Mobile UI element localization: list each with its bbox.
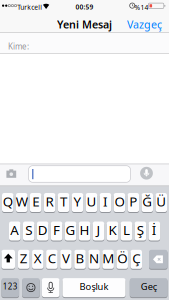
button[interactable]: Geç: [130, 278, 167, 298]
staticText: Kime:: [8, 41, 29, 52]
button[interactable]: S: [23, 221, 34, 241]
button[interactable]: B: [74, 249, 86, 269]
button[interactable]: C: [46, 249, 58, 269]
button[interactable]: Z: [18, 249, 29, 269]
staticText: F: [53, 221, 60, 239]
button[interactable]: Q: [2, 192, 13, 212]
staticText: Q: [3, 192, 13, 210]
staticText: U: [86, 192, 96, 210]
staticText: Ğ: [142, 192, 152, 210]
staticText: I: [103, 192, 108, 210]
staticText: H: [79, 221, 89, 239]
staticText: İ: [152, 221, 157, 239]
button[interactable]: J: [93, 221, 104, 241]
button[interactable]: M: [102, 249, 114, 269]
staticText: G: [66, 221, 76, 239]
staticText: W: [16, 192, 28, 210]
staticText: P: [129, 192, 137, 210]
button[interactable]: F: [51, 221, 62, 241]
button[interactable]: İ: [149, 221, 160, 241]
button[interactable]: Vazgeç: [127, 17, 162, 32]
staticText: Y: [73, 192, 81, 210]
staticText: S: [25, 221, 32, 239]
button[interactable]: L: [121, 221, 132, 241]
staticText: N: [89, 249, 99, 267]
button[interactable]: I: [100, 192, 111, 212]
staticText: Boşluk: [79, 280, 108, 293]
button[interactable]: Sesli mesaj kaydet: [140, 167, 153, 180]
staticText: M: [102, 249, 114, 267]
staticText: O: [114, 192, 124, 210]
button[interactable]: Ş: [135, 221, 146, 241]
button[interactable]: K: [107, 221, 118, 241]
staticText: J: [96, 221, 100, 239]
staticText: %14: [135, 3, 149, 12]
button[interactable]: U: [86, 192, 97, 212]
button[interactable]: Ö: [116, 249, 128, 269]
button[interactable]: Ç: [131, 249, 142, 269]
button[interactable]: E: [30, 192, 41, 212]
button[interactable]: W: [16, 192, 27, 212]
staticText: R: [46, 192, 54, 210]
staticText: Turkcell: [17, 3, 42, 12]
staticText: B: [75, 249, 84, 267]
button[interactable]: T: [58, 192, 69, 212]
staticText: 00:59: [75, 2, 93, 11]
staticText: Geç: [141, 280, 157, 293]
staticText: Ü: [156, 192, 166, 210]
button[interactable]: Ğ: [142, 192, 153, 212]
button[interactable]: Y: [72, 192, 83, 212]
staticText: 123: [3, 281, 18, 292]
staticText: L: [123, 221, 130, 239]
button[interactable]: Fotoğraf ekle: [5, 169, 17, 179]
staticText: K: [108, 221, 116, 239]
button[interactable]: Sil: [149, 249, 167, 269]
button[interactable]: G: [65, 221, 76, 241]
button[interactable]: O: [114, 192, 125, 212]
button[interactable]: R: [44, 192, 55, 212]
staticText: Yeni Mesaj: [57, 17, 112, 32]
button[interactable]: A: [9, 221, 20, 241]
button[interactable]: Dikte: [42, 278, 59, 298]
staticText: Ş: [137, 221, 144, 239]
button[interactable]: Emoji: [22, 278, 40, 298]
staticText: Z: [20, 249, 28, 267]
button[interactable]: X: [32, 249, 44, 269]
button[interactable]: 123: [1, 278, 19, 298]
staticText: E: [32, 192, 39, 210]
button[interactable]: H: [79, 221, 90, 241]
button[interactable]: Kime: [0, 33, 169, 53]
staticText: C: [48, 249, 56, 267]
staticText: Vazgeç: [127, 17, 162, 32]
button[interactable]: N: [88, 249, 100, 269]
staticText: Ç: [132, 249, 140, 267]
staticText: T: [60, 192, 67, 210]
button[interactable]: P: [128, 192, 139, 212]
staticText: D: [38, 221, 48, 239]
button[interactable]: Boşluk: [62, 278, 125, 298]
staticText: X: [34, 249, 42, 267]
button[interactable]: Mesaj yazın: [28, 166, 130, 182]
button[interactable]: Shift: [1, 249, 15, 269]
staticText: V: [62, 249, 70, 267]
staticText: Ö: [117, 249, 127, 267]
staticText: A: [10, 221, 19, 239]
button[interactable]: V: [60, 249, 72, 269]
button[interactable]: Ü: [156, 192, 167, 212]
button[interactable]: D: [37, 221, 48, 241]
